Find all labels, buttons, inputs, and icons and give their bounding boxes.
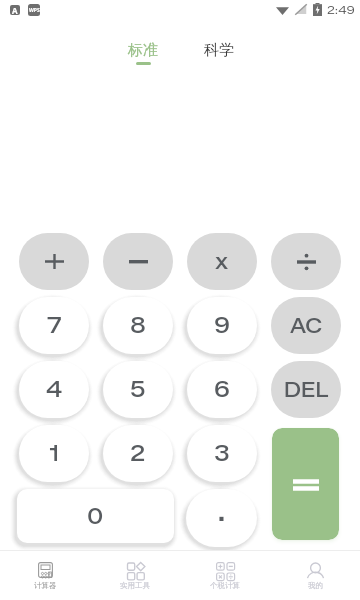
staticText: 3 (214, 440, 230, 467)
button[interactable]: 计算器 (0, 551, 90, 600)
staticText: AC (290, 313, 323, 338)
button[interactable]: 4 (19, 361, 89, 418)
staticText: 我的 (308, 581, 323, 590)
button[interactable]: 8 (103, 297, 173, 354)
staticText: 0 (87, 503, 104, 530)
staticText: 标准 (128, 41, 158, 60)
button[interactable]: Divide (271, 233, 341, 290)
staticText: WPS (29, 7, 40, 14)
staticText: 2 (130, 440, 146, 467)
button[interactable]: 实用工具 (90, 551, 180, 600)
staticText: x (215, 248, 229, 275)
staticText: 8 (130, 312, 146, 339)
staticText: 个税计算 (210, 581, 240, 590)
staticText: 计算器 (34, 581, 57, 590)
staticText: 9 (214, 312, 230, 339)
button[interactable]: Multiply (187, 233, 257, 290)
button[interactable]: 6 (187, 361, 257, 418)
button[interactable]: 个税计算 (180, 551, 270, 600)
button[interactable]: 0 (17, 489, 174, 543)
button[interactable]: 5 (103, 361, 173, 418)
staticText: DEL (284, 377, 329, 402)
staticText: 5 (130, 376, 146, 403)
button[interactable]: 标准 (120, 41, 166, 65)
button[interactable]: 1 (19, 425, 89, 482)
staticText: 实用工具 (120, 581, 150, 590)
staticText: 2:49 (327, 3, 355, 17)
staticText: 1 (49, 440, 60, 467)
staticText: 4 (46, 376, 63, 403)
button[interactable]: Minus (103, 233, 173, 290)
staticText: · (216, 500, 227, 536)
staticText: 7 (47, 312, 62, 339)
button[interactable]: 3 (187, 425, 257, 482)
button[interactable]: 科学 (196, 41, 242, 65)
button[interactable]: Equals (272, 428, 339, 540)
button[interactable]: 我的 (270, 551, 360, 600)
button[interactable]: Plus (19, 233, 89, 290)
button[interactable]: DEL (271, 361, 341, 418)
button[interactable]: AC (271, 297, 341, 354)
staticText: 6 (214, 376, 230, 403)
staticText: A (12, 5, 18, 15)
staticText: 科学 (204, 41, 234, 60)
button[interactable]: 9 (187, 297, 257, 354)
button[interactable]: 7 (19, 297, 89, 354)
button[interactable]: · (186, 489, 257, 547)
button[interactable]: 2 (103, 425, 173, 482)
